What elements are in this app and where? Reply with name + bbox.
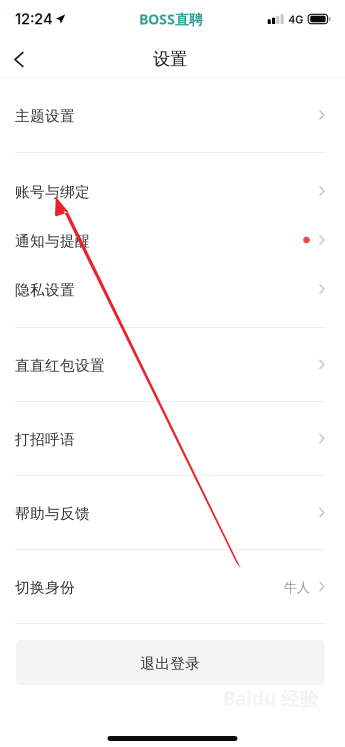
button[interactable]: Back: [0, 38, 40, 77]
staticText: 通知与提醒: [15, 232, 90, 250]
staticText: BOSS直聘: [139, 9, 203, 28]
staticText: 隐私设置: [15, 281, 75, 299]
button[interactable]: 切换身份: [0, 550, 345, 623]
button[interactable]: 隐私设置: [0, 264, 345, 313]
staticText: 牛人: [284, 579, 310, 596]
staticText: 打招呼语: [15, 430, 75, 449]
staticText: Baidu 经验: [223, 685, 319, 711]
staticText: 退出登录: [140, 654, 200, 673]
staticText: 12:24: [15, 10, 53, 28]
staticText: 直直红包设置: [15, 356, 105, 375]
button[interactable]: 直直红包设置: [0, 328, 345, 401]
button[interactable]: 退出登录: [16, 640, 324, 685]
staticText: 账号与绑定: [15, 183, 90, 201]
button[interactable]: 打招呼语: [0, 402, 345, 475]
button[interactable]: 账号与绑定: [0, 166, 345, 215]
staticText: 主题设置: [15, 107, 75, 125]
staticText: 切换身份: [15, 578, 75, 597]
staticText: 4G: [288, 13, 303, 26]
staticText: 帮助与反馈: [15, 504, 90, 523]
button[interactable]: 帮助与反馈: [0, 476, 345, 549]
button[interactable]: 通知与提醒: [0, 215, 345, 264]
staticText: 设置: [153, 48, 187, 70]
button[interactable]: 主题设置: [0, 78, 345, 152]
